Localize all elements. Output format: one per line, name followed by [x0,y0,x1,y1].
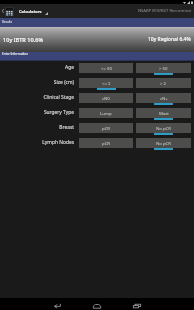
button[interactable]: cN0 [79,93,133,103]
staticText: cN+ [160,95,168,101]
staticText: Surgery Type [43,109,74,116]
staticText: <= 50 [101,65,112,71]
staticText: Lump [100,110,112,116]
staticText: > 50 [159,65,168,71]
staticText: pCR [102,125,111,131]
button[interactable]: No pCR [136,123,191,135]
staticText: cN0 [102,95,110,101]
staticText: Lymph Nodes [42,139,74,146]
staticText: No pCR [156,125,172,131]
staticText: No pCR [156,140,172,146]
staticText: pCR [102,140,111,146]
button[interactable]: Navigate up [0,4,5,18]
button[interactable]: pCR [79,123,133,133]
button[interactable]: pCR [79,138,133,148]
staticText: Clinical Stage [43,94,74,101]
button[interactable]: Back [47,298,68,310]
button[interactable]: Recent apps [126,298,147,310]
button[interactable]: Mast [136,108,191,120]
staticText: > 2 [160,80,167,86]
button[interactable]: App icon [5,7,14,16]
staticText: 10y IBTR 10.6% [3,36,44,44]
button[interactable]: > 50 [136,63,191,75]
staticText: 10y Regional 6.4% [148,36,191,43]
staticText: Results [2,20,13,24]
button[interactable]: No pCR [136,138,191,150]
button[interactable]: Home [86,298,107,310]
staticText: Mast [159,110,169,116]
staticText: Breast [59,124,74,131]
button[interactable]: <= 2 [79,78,133,90]
button[interactable]: Results [0,18,194,27]
staticText: Enter Information [2,52,29,56]
staticText: Size (cm) [53,79,74,86]
staticText: NSABP B18/B27 Recurrence [138,8,192,14]
button[interactable]: Lump [79,108,133,118]
button[interactable]: cN+ [136,93,191,105]
button[interactable]: <= 50 [79,63,133,73]
staticText: <= 2 [102,80,111,86]
staticText: Age [65,64,74,71]
button[interactable]: > 2 [136,78,191,88]
staticText: Calculators [19,9,42,14]
